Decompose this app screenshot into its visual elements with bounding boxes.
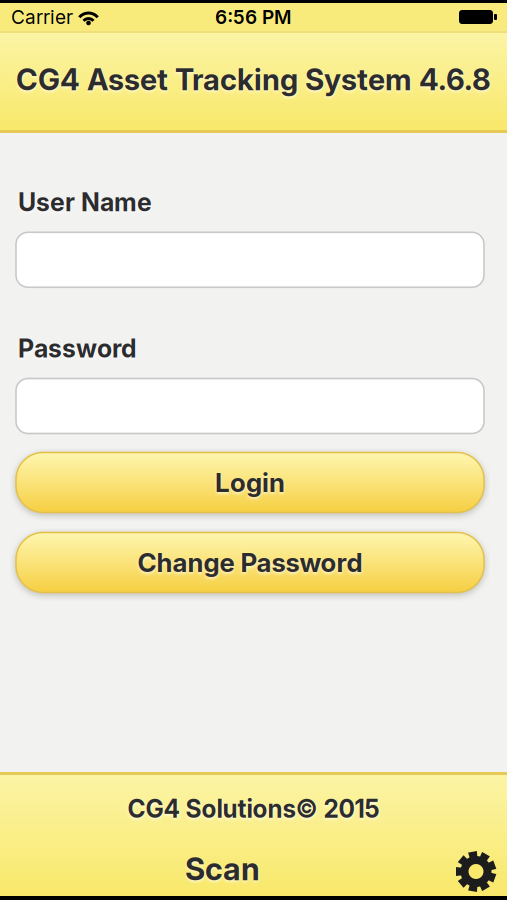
button[interactable]: Password text field (16, 378, 484, 433)
staticText: User Name (18, 187, 152, 217)
staticText: Password (18, 333, 137, 363)
staticText: Scan (185, 850, 260, 888)
staticText: 6:56 PM (215, 5, 292, 28)
staticText: Change Password (137, 547, 362, 578)
button[interactable]: User Name text field (16, 232, 484, 287)
button[interactable]: Settings (454, 849, 498, 893)
button[interactable]: Scan (185, 850, 260, 888)
button[interactable]: Change Password (16, 532, 484, 592)
staticText: CG4 Asset Tracking System 4.6.8 (16, 62, 491, 97)
button[interactable]: Login (16, 452, 484, 512)
staticText: Carrier (11, 5, 73, 28)
staticText: CG4 Solutions© 2015 (127, 794, 379, 824)
staticText: Login (215, 467, 285, 498)
